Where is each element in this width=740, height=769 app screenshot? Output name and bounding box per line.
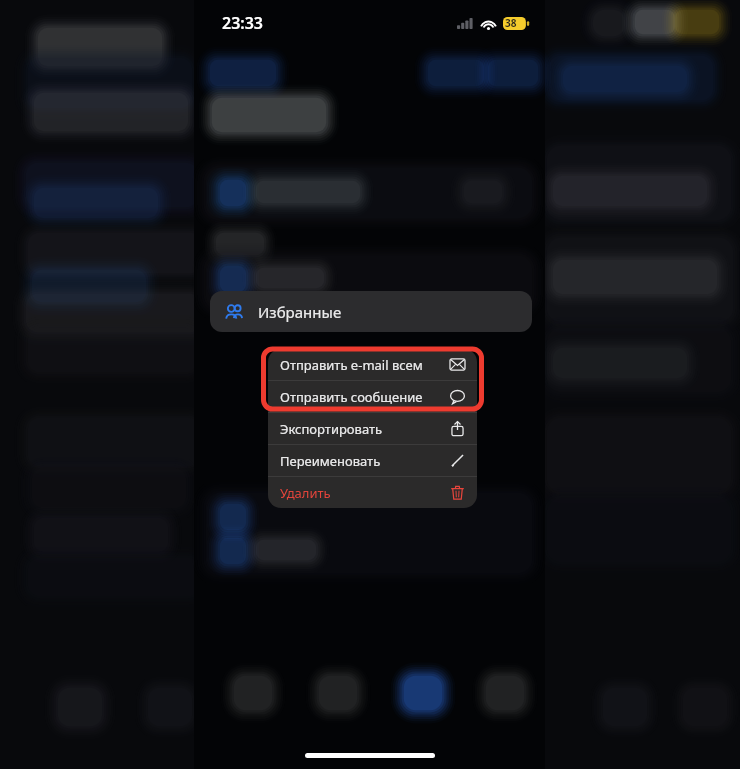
staticText: 38 — [505, 16, 517, 30]
button[interactable]: Переименовать — [268, 445, 477, 476]
other: Email — [450, 357, 465, 372]
other: Message — [450, 389, 465, 404]
button[interactable]: Tab 2 — [311, 672, 365, 720]
staticText: Переименовать — [280, 452, 444, 470]
staticText: Отправить e-mail всем — [280, 356, 444, 374]
button[interactable]: Удалить — [268, 477, 477, 508]
staticText: Отправить сообщение всем — [280, 388, 444, 406]
staticText: Удалить — [280, 484, 444, 502]
other: Delete — [450, 485, 465, 500]
button[interactable]: Tab 4 — [478, 672, 532, 720]
other: Export — [450, 421, 465, 436]
button[interactable]: Экспортировать — [268, 413, 477, 444]
button[interactable]: Отправить e-mail всем — [268, 349, 477, 380]
button[interactable]: Tab 1 — [226, 672, 280, 720]
button[interactable]: Отправить сообщение всем — [268, 381, 477, 412]
staticText: Экспортировать — [280, 420, 444, 438]
staticText: Избранные — [258, 302, 342, 322]
button[interactable]: Tab 3 — [396, 672, 450, 720]
staticText: 23:33 — [222, 12, 264, 34]
other: Rename — [450, 453, 465, 468]
button[interactable]: Избранные — [210, 291, 532, 332]
